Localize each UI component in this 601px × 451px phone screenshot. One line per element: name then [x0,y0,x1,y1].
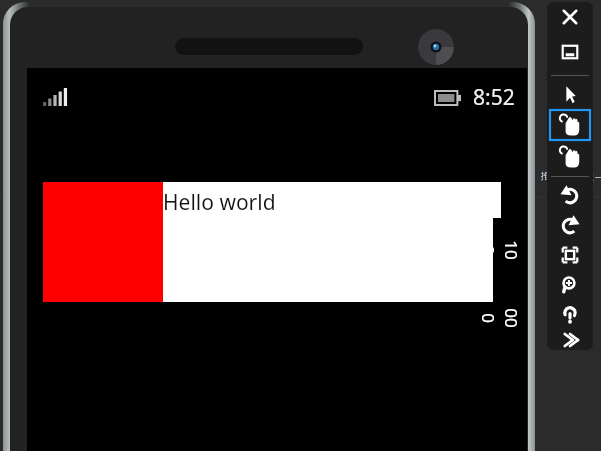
staticText: Hello world [163,188,276,217]
button[interactable]: Tap gesture [550,110,590,140]
button[interactable]: More [547,330,593,350]
button[interactable]: Rotate left [547,180,593,210]
staticText: 推 [541,170,550,181]
button[interactable]: Help [547,300,593,330]
button[interactable] [43,182,493,302]
button[interactable]: Zoom in [547,270,593,300]
button[interactable]: Drag gesture [550,142,590,172]
button[interactable]: Close [547,2,593,32]
button[interactable]: Select [547,79,593,109]
staticText: 100 [477,237,523,263]
staticText: ボー [585,172,601,183]
button[interactable]: Rotate right [547,210,593,240]
button[interactable]: Minimize window [547,32,593,72]
staticText: 8:52 [473,83,515,112]
staticText: 000 [477,305,523,331]
button[interactable]: Fit to screen [547,240,593,270]
